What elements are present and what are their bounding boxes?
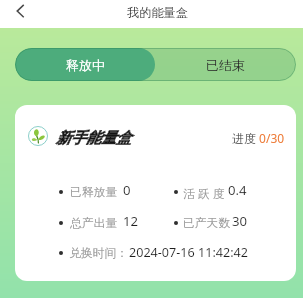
staticText: 我的能量盒 [127, 5, 188, 20]
staticText: 进度 0/30 [232, 130, 285, 146]
staticText: 已结束 [206, 57, 245, 73]
staticText: 已释放量 [70, 185, 118, 200]
staticText: 总产出量 [70, 216, 118, 231]
button[interactable]: 新手能量盒 [15, 105, 296, 281]
button[interactable]: 释放中 [15, 48, 155, 81]
staticText: 0.4 [228, 181, 247, 199]
staticText: 30 [232, 212, 248, 230]
staticText: 释放中 [66, 57, 105, 73]
button[interactable]: 已结束 [155, 48, 296, 81]
button[interactable]: Back [6, 0, 34, 28]
staticText: 新手能量盒 [56, 129, 131, 148]
staticText: 2024-07-16 11:42:42 [129, 244, 248, 261]
staticText: 活 跃 度 [183, 185, 225, 201]
staticText: 已产天数 [183, 216, 231, 231]
staticText: 兑换时间： [69, 246, 128, 261]
staticText: 12 [123, 212, 139, 230]
staticText: 新手能量盒 [56, 129, 131, 148]
staticText: 0 [123, 181, 131, 199]
